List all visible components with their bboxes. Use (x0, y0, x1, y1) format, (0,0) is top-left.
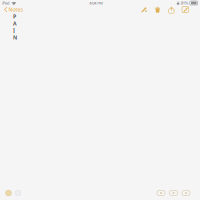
button[interactable]: Markup (140, 6, 148, 13)
button[interactable]: Delete (154, 6, 161, 13)
staticText: 81% (181, 0, 189, 6)
button[interactable]: Undo (158, 189, 164, 196)
button[interactable]: New Note (181, 6, 189, 13)
staticText: A (13, 20, 17, 27)
button[interactable]: More (183, 189, 189, 196)
button[interactable]: Redo (170, 189, 176, 196)
staticText: P (13, 13, 16, 20)
button[interactable]: Eraser (15, 188, 21, 197)
staticText: 4:04 PM (89, 0, 103, 6)
staticText: iPad (2, 0, 10, 6)
staticText: Notes (8, 6, 23, 13)
button[interactable]: Share (168, 6, 175, 13)
button[interactable]: Ink colour (5, 188, 11, 197)
staticText: N (13, 34, 17, 41)
staticText: I (13, 27, 15, 34)
button[interactable]: Notes (0, 6, 26, 13)
